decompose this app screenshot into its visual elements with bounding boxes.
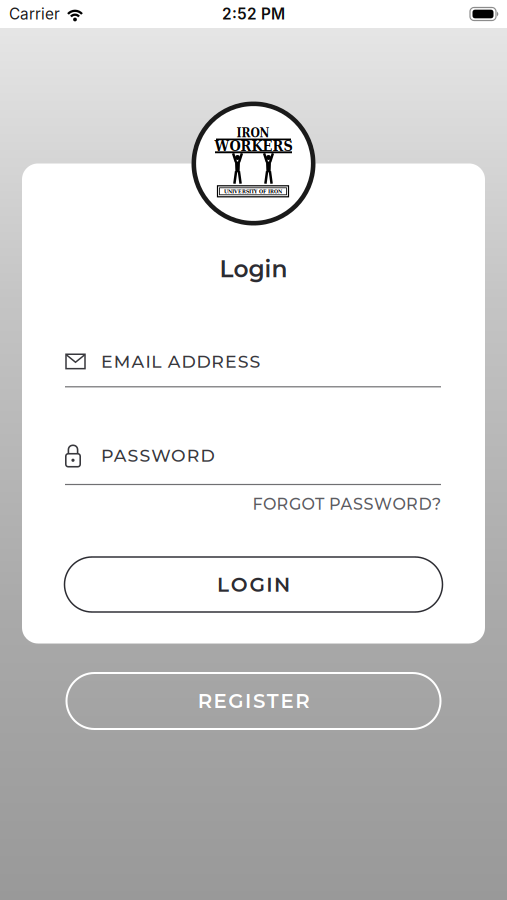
staticText: 2:52 PM [222,5,285,23]
staticText: Carrier [9,5,60,23]
staticText: PASSWORD [101,445,215,466]
staticText: WORKERS [214,137,292,154]
button[interactable]: FORGOT PASSWORD? [252,494,441,514]
staticText: UNIVERSITY OF IRON [224,188,282,194]
staticText: EMAIL ADDRESS [101,351,261,372]
button[interactable]: LOGIN [64,557,442,612]
button[interactable]: EMAIL ADDRESS [65,347,441,375]
staticText: Login [219,255,287,283]
staticText: FORGOT PASSWORD? [252,494,441,514]
button[interactable]: REGISTER [66,673,440,729]
button[interactable]: PASSWORD [65,441,441,469]
staticText: IRON [236,126,269,140]
staticText: LOGIN [217,572,290,597]
staticText: REGISTER [198,689,309,713]
